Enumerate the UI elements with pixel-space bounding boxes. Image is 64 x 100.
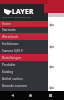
- button[interactable]: Warenkorb: [0, 33, 48, 40]
- staticText: Katalog: [2, 70, 14, 74]
- button[interactable]: Katalog: [0, 68, 48, 75]
- button[interactable]: Recents: [36, 91, 64, 100]
- staticText: Summe 0,00 €: [2, 49, 23, 53]
- button[interactable]: Home: [24, 91, 36, 100]
- button[interactable]: Home: [0, 21, 48, 27]
- staticText: Funktionen: [2, 42, 19, 46]
- button[interactable]: Barcode scannen: [0, 82, 48, 89]
- staticText: LAYER: [12, 7, 34, 16]
- button[interactable]: Funktionen: [0, 40, 48, 47]
- button[interactable]: Produkte: [0, 61, 48, 68]
- staticText: www.layer-grosshandel.de: [2, 16, 31, 19]
- staticText: Barcode scannen: [2, 84, 27, 88]
- staticText: Startseite: [2, 28, 16, 32]
- staticText: Produkte: [2, 63, 16, 67]
- staticText: Artikel suchen: [2, 77, 23, 81]
- button[interactable]: Startseite: [0, 27, 48, 33]
- staticText: Home: [2, 22, 11, 26]
- button[interactable]: Bestellungen: [0, 54, 48, 61]
- button[interactable]: Summe 0,00 €: [0, 47, 48, 54]
- staticText: Warenkorb: [2, 35, 19, 39]
- button[interactable]: Artikel suchen: [0, 75, 48, 82]
- button[interactable]: Back: [0, 91, 24, 100]
- staticText: Bestellungen: [2, 56, 22, 60]
